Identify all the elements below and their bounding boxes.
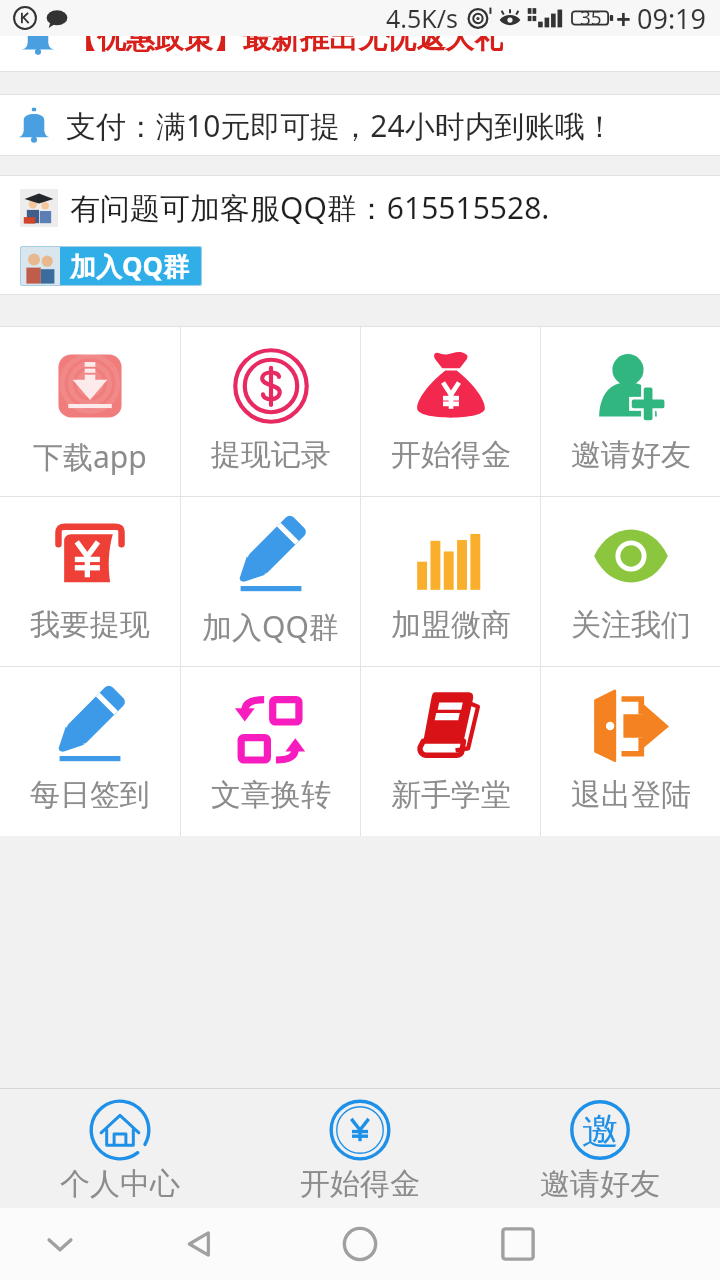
button[interactable]: 开始得金 <box>361 327 540 496</box>
staticText: 支付：满10元即可提，24小时内到账哦！ <box>66 105 615 146</box>
button[interactable]: 加入QQ群 <box>20 246 202 286</box>
staticText: 35 <box>580 5 602 31</box>
staticText: 新手学堂 <box>391 776 511 814</box>
staticText: 每日签到 <box>30 776 150 814</box>
button[interactable]: 开始得金 <box>240 1089 480 1208</box>
staticText: 退出登陆 <box>571 776 691 814</box>
staticText: 邀请好友 <box>571 436 691 474</box>
staticText: 关注我们 <box>571 606 691 644</box>
button[interactable]: 邀请好友 <box>541 327 720 496</box>
staticText: 加入QQ群 <box>202 606 339 647</box>
button[interactable]: 提现记录 <box>181 327 360 496</box>
button[interactable]: Home <box>335 1219 385 1269</box>
button[interactable]: 新手学堂 <box>361 667 540 836</box>
staticText: 【优惠政策】最新推出无忧返大礼 <box>68 36 503 55</box>
staticText: 加入QQ群 <box>70 248 190 284</box>
button[interactable]: 加盟微商 <box>361 497 540 666</box>
staticText: 09:19 <box>637 0 707 36</box>
staticText: 文章换转 <box>211 776 331 814</box>
staticText: 开始得金 <box>391 436 511 474</box>
staticText: 有问题可加客服QQ群：615515528. <box>70 187 550 228</box>
button[interactable]: 加入QQ群 <box>181 497 360 666</box>
button[interactable]: 文章换转 <box>181 667 360 836</box>
button[interactable]: 下载app <box>0 327 180 496</box>
button[interactable]: 邀请好友 <box>480 1089 720 1208</box>
button[interactable]: 个人中心 <box>0 1089 240 1208</box>
button[interactable]: 【优惠政策】最新推出无忧返大礼 <box>0 36 720 71</box>
staticText: 下载app <box>33 436 147 477</box>
staticText: 4.5K/s <box>386 1 459 35</box>
button[interactable]: 关注我们 <box>541 497 720 666</box>
button[interactable]: 支付：满10元即可提，24小时内到账哦！ <box>0 95 720 155</box>
staticText: 我要提现 <box>30 606 150 644</box>
button[interactable]: 我要提现 <box>0 497 180 666</box>
staticText: 个人中心 <box>60 1165 180 1203</box>
button[interactable]: Hide keyboard <box>35 1219 85 1269</box>
staticText: 邀 <box>582 1108 619 1155</box>
button[interactable]: Recent apps <box>493 1219 543 1269</box>
button[interactable]: 每日签到 <box>0 667 180 836</box>
staticText: + <box>616 1 631 36</box>
button[interactable]: Back <box>174 1219 224 1269</box>
staticText: 加盟微商 <box>391 606 511 644</box>
staticText: 提现记录 <box>211 436 331 474</box>
staticText: 开始得金 <box>300 1165 420 1203</box>
button[interactable]: 退出登陆 <box>541 667 720 836</box>
staticText: 邀请好友 <box>540 1165 660 1203</box>
